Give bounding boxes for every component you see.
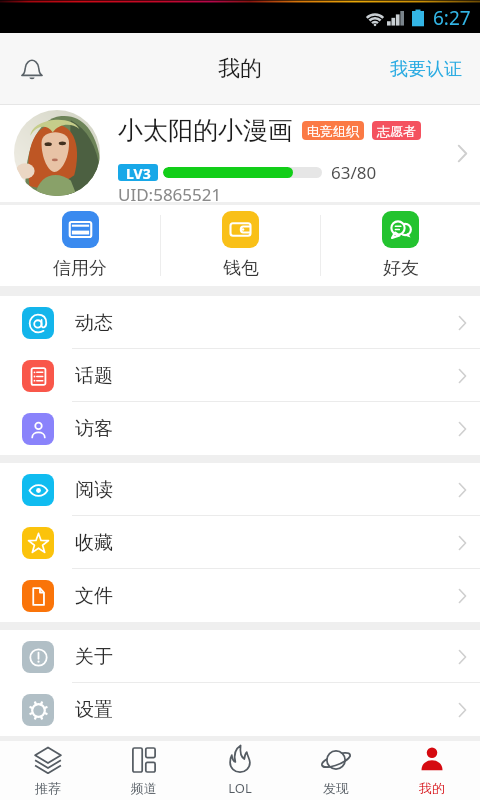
staticText: 信用分 [53, 257, 107, 280]
button[interactable]: 设置 [0, 683, 480, 736]
button[interactable]: 小太阳的小漫画 [0, 105, 480, 202]
button[interactable]: 阅读 [0, 463, 480, 516]
button[interactable]: 发现 [288, 741, 384, 800]
staticText: LOL [228, 779, 252, 797]
staticText: 6:27 [433, 5, 471, 31]
staticText: UID:5865521 [118, 183, 222, 206]
staticText: 电竞组织 [307, 123, 359, 139]
button[interactable]: 收藏 [0, 516, 480, 569]
button[interactable]: 文件 [0, 569, 480, 622]
staticText: 访客 [75, 417, 113, 441]
staticText: 发现 [323, 780, 349, 796]
button[interactable]: 钱包 [161, 205, 320, 286]
button[interactable]: 好友 [321, 205, 480, 286]
button[interactable]: 我要认证 [382, 48, 470, 91]
staticText: 推荐 [35, 780, 61, 796]
button[interactable]: 推荐 [0, 741, 96, 800]
staticText: 志愿者 [377, 123, 416, 139]
staticText: 关于 [75, 645, 113, 669]
staticText: 动态 [75, 311, 113, 335]
staticText: LV3 [126, 164, 151, 181]
button[interactable]: 关于 [0, 630, 480, 683]
staticText: 好友 [383, 257, 419, 280]
staticText: 小太阳的小漫画 [118, 115, 293, 146]
staticText: 频道 [131, 780, 157, 796]
staticText: 话题 [75, 364, 113, 388]
staticText: 我要认证 [390, 58, 462, 81]
staticText: 设置 [75, 698, 113, 722]
staticText: 收藏 [75, 531, 113, 555]
button[interactable]: 话题 [0, 349, 480, 402]
button[interactable]: Notifications [9, 46, 55, 92]
button[interactable]: 信用分 [0, 205, 160, 286]
staticText: 我的 [218, 55, 262, 83]
staticText: 我的 [419, 780, 445, 796]
button[interactable]: 频道 [96, 741, 192, 800]
button[interactable]: 我的 [384, 741, 480, 800]
staticText: 钱包 [223, 257, 259, 280]
button[interactable]: 动态 [0, 296, 480, 349]
staticText: 阅读 [75, 478, 113, 502]
staticText: 63/80 [331, 161, 377, 184]
button[interactable]: 访客 [0, 402, 480, 455]
staticText: 文件 [75, 584, 113, 608]
button[interactable]: LOL [192, 741, 288, 800]
